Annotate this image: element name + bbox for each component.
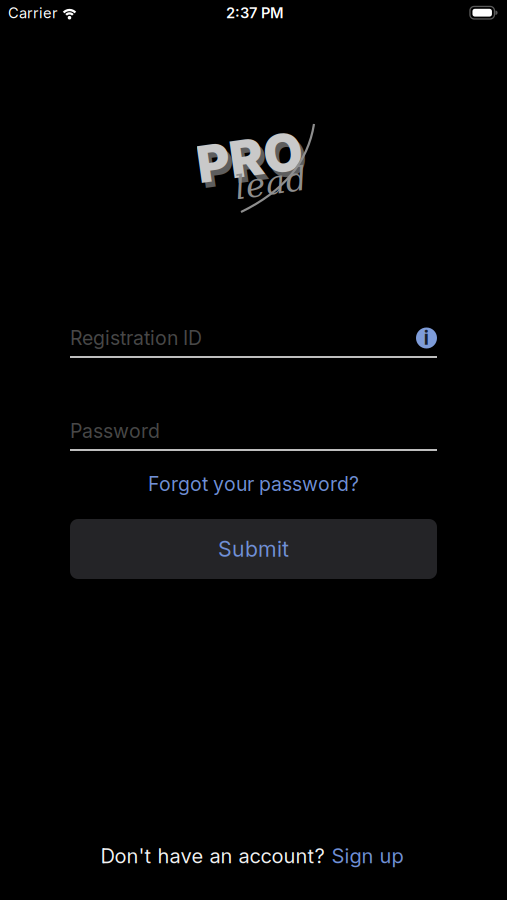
staticText: Password	[70, 419, 160, 443]
button[interactable]: Registration ID	[70, 326, 437, 350]
staticText: PRO	[196, 127, 302, 188]
button[interactable]: Forgot your password?	[148, 472, 359, 496]
button[interactable]: Submit	[70, 519, 437, 579]
staticText: Forgot your password?	[148, 472, 359, 496]
staticText: Registration ID	[70, 326, 202, 350]
staticText: lead	[234, 164, 306, 202]
button[interactable]: Sign up	[331, 844, 403, 868]
button[interactable]: Password	[70, 419, 437, 443]
staticText: Don't have an account?	[100, 844, 324, 868]
staticText: Sign up	[331, 844, 403, 868]
staticText: 2:37 PM	[226, 4, 284, 22]
staticText: Submit	[218, 536, 289, 562]
staticText: Carrier	[8, 4, 58, 22]
staticText: PRO	[200, 132, 306, 193]
button[interactable]: About Registration ID	[416, 327, 437, 348]
staticText: i	[423, 325, 429, 350]
